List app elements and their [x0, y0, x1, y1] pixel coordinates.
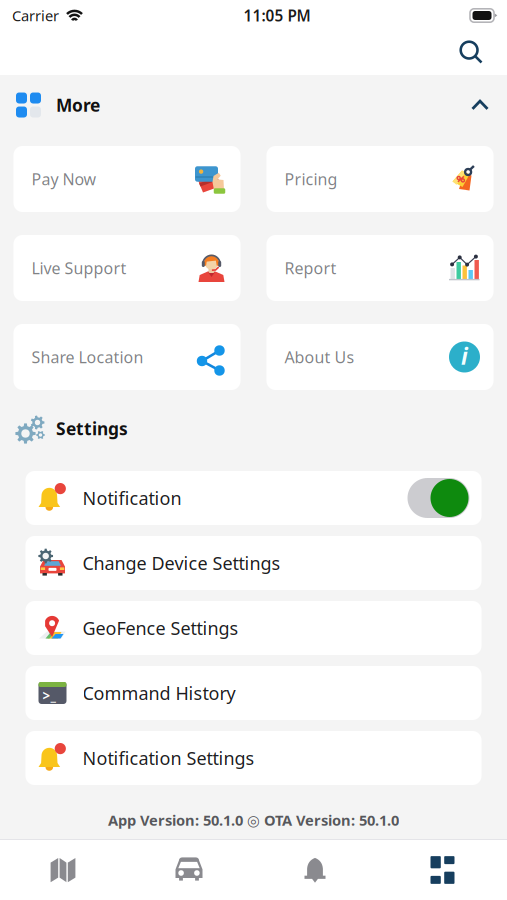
button[interactable]: More: [378, 840, 507, 900]
staticText: 11:05 PM: [243, 5, 310, 26]
button[interactable]: Pay Now: [13, 146, 240, 212]
staticText: Report: [284, 257, 336, 279]
button[interactable]: Change Device Settings: [25, 536, 481, 590]
staticText: Settings: [56, 417, 128, 440]
button[interactable]: Map: [0, 840, 126, 900]
staticText: App Version: 50.1.0 ◎ OTA Version: 50.1.…: [108, 810, 399, 830]
staticText: About Us: [284, 346, 354, 368]
button[interactable]: Report: [266, 235, 493, 301]
button[interactable]: GeoFence Settings: [25, 601, 481, 655]
staticText: Pay Now: [31, 168, 96, 190]
staticText: Share Location: [31, 346, 143, 368]
button[interactable]: Share Location: [13, 324, 240, 390]
button[interactable]: More: [0, 75, 507, 135]
button[interactable]: Vehicles: [126, 840, 252, 900]
button[interactable]: >_: [25, 666, 481, 720]
staticText: Change Device Settings: [82, 551, 280, 575]
staticText: i: [461, 341, 468, 371]
button[interactable]: Search: [450, 31, 494, 75]
staticText: Carrier: [12, 5, 59, 25]
button[interactable]: Notification toggle: [407, 478, 469, 518]
staticText: Pricing: [284, 168, 337, 190]
staticText: Notification Settings: [82, 746, 254, 770]
staticText: Live Support: [31, 257, 126, 279]
staticText: >_: [42, 687, 55, 704]
staticText: GeoFence Settings: [82, 616, 238, 640]
button[interactable]: Pricing: [266, 146, 493, 212]
button[interactable]: Live Support: [13, 235, 240, 301]
button[interactable]: Notification Settings: [25, 731, 481, 785]
staticText: Command History: [82, 681, 235, 705]
staticText: Notification: [82, 486, 181, 510]
button[interactable]: About Us: [266, 324, 493, 390]
button[interactable]: Notification: [25, 471, 481, 525]
staticText: More: [56, 93, 100, 117]
button[interactable]: Notifications: [252, 840, 378, 900]
